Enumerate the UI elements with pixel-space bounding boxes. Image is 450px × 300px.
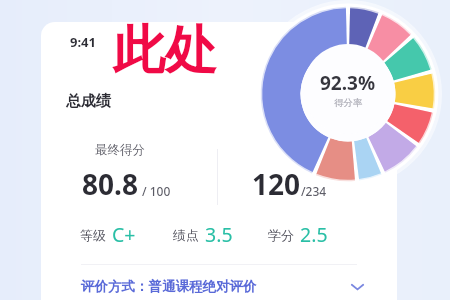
staticText: 学分 xyxy=(268,227,294,243)
staticText: 此处 xyxy=(113,18,217,84)
button[interactable]: 评价方式：普通课程绝对评价 xyxy=(81,273,367,300)
button[interactable]: 等级 xyxy=(80,221,136,248)
staticText: 最终得分 xyxy=(95,142,145,158)
other: Expand evaluation method xyxy=(348,277,367,296)
staticText: C+ xyxy=(112,221,136,248)
staticText: 总成绩 xyxy=(66,92,111,111)
button[interactable]: 绩点 xyxy=(173,221,233,248)
staticText: 评价方式：普通课程绝对评价 xyxy=(81,278,257,295)
staticText: 2.5 xyxy=(300,221,328,248)
staticText: 得分率 xyxy=(334,97,363,109)
staticText: 绩点 xyxy=(173,227,199,243)
staticText: 3.5 xyxy=(205,221,233,248)
button[interactable]: 学分 xyxy=(268,221,328,248)
staticText: 120 xyxy=(252,165,301,203)
staticText: 80.8 xyxy=(82,165,138,203)
staticText: 9:41 xyxy=(70,33,96,51)
staticText: 等级 xyxy=(80,227,106,243)
staticText: 92.3% xyxy=(320,70,376,96)
staticText: /234 xyxy=(301,183,327,199)
staticText: / 100 xyxy=(142,183,171,199)
